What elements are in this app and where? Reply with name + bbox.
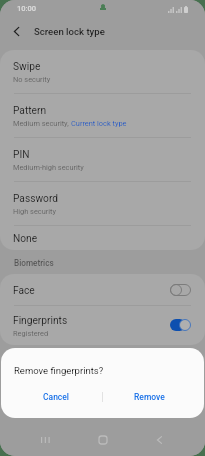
staticText: Password <box>13 193 58 205</box>
staticText: Swipe <box>13 61 41 73</box>
button[interactable]: Recent apps <box>31 425 60 454</box>
staticText: Pattern <box>13 105 47 117</box>
button[interactable]: Password <box>0 182 205 225</box>
staticText: PIN <box>13 149 30 161</box>
staticText: High security <box>13 207 57 216</box>
staticText: Current lock type <box>71 119 127 128</box>
button[interactable]: Fingerprints <box>0 306 205 345</box>
staticText: Registered <box>13 329 49 338</box>
button[interactable]: Back <box>145 425 174 454</box>
staticText: Fingerprints <box>13 315 68 327</box>
staticText: None <box>13 233 38 245</box>
staticText: Biometrics <box>14 258 54 268</box>
button[interactable]: Cancel <box>10 385 102 409</box>
staticText: Screen lock type <box>34 26 105 37</box>
staticText: Face <box>13 285 35 297</box>
button[interactable]: Navigate up <box>0 22 33 41</box>
button[interactable]: Remove <box>103 385 195 409</box>
button[interactable]: Pattern <box>0 94 205 137</box>
button[interactable]: Face <box>0 274 205 305</box>
button[interactable]: None <box>0 226 205 250</box>
staticText: Medium security, <box>13 119 71 128</box>
button[interactable]: Home <box>88 425 117 454</box>
staticText: Medium-high security <box>13 163 84 172</box>
staticText: Remove <box>134 392 165 402</box>
staticText: Cancel <box>43 392 70 402</box>
staticText: 10:00 <box>17 4 37 13</box>
staticText: Remove fingerprints? <box>14 365 104 376</box>
button[interactable]: PIN <box>0 138 205 181</box>
button[interactable]: Swipe <box>0 50 205 93</box>
staticText: No security <box>13 75 51 84</box>
